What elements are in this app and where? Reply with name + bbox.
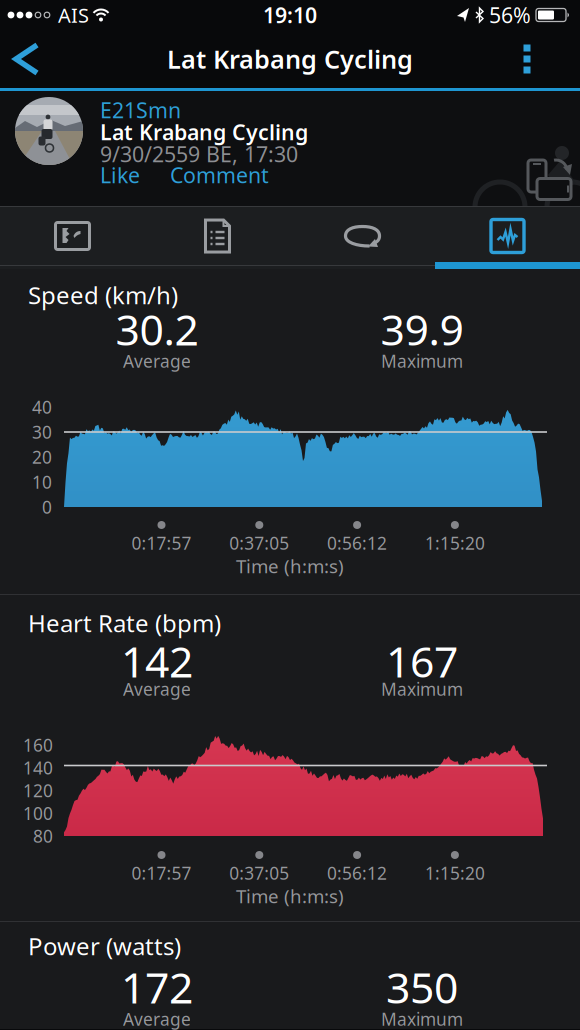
staticText: 160 — [23, 733, 53, 756]
staticText: Comment — [170, 161, 269, 189]
button[interactable]: Back — [0, 30, 56, 88]
staticText: Time (h:m:s) — [236, 884, 344, 908]
staticText: 30 — [32, 420, 52, 443]
staticText: Average — [123, 677, 191, 700]
staticText: 1:15:20 — [425, 861, 485, 884]
staticText: 39.9 — [380, 301, 463, 357]
staticText: 0:56:12 — [327, 861, 387, 884]
button[interactable]: Laps — [307, 209, 417, 263]
staticText: 56% — [489, 1, 531, 29]
staticText: Speed (km/h) — [28, 279, 178, 311]
staticText: 0:17:57 — [131, 861, 191, 884]
staticText: Like — [100, 161, 140, 189]
staticText: 100 — [23, 802, 53, 825]
staticText: 140 — [23, 756, 53, 779]
staticText: 142 — [121, 633, 193, 689]
button[interactable]: Details — [162, 209, 272, 263]
staticText: 120 — [23, 779, 53, 802]
staticText: 40 — [32, 395, 52, 418]
staticText: Maximum — [381, 349, 463, 372]
staticText: Lat Krabang Cycling — [167, 42, 413, 76]
staticText: Average — [123, 1007, 191, 1030]
staticText: 0:37:05 — [229, 531, 289, 554]
staticText: 1:15:20 — [425, 531, 485, 554]
button[interactable]: Like — [100, 161, 140, 189]
button[interactable]: Snapshots — [17, 209, 127, 263]
staticText: 0 — [42, 495, 52, 518]
staticText: 0:56:12 — [327, 531, 387, 554]
staticText: E21Smn — [100, 96, 181, 124]
staticText: 9/30/2559 BE, 17:30 — [100, 140, 298, 168]
staticText: 19:10 — [263, 1, 317, 29]
button[interactable]: Comment — [170, 161, 269, 189]
staticText: Lat Krabang Cycling — [100, 118, 308, 146]
staticText: 0:17:57 — [131, 531, 191, 554]
staticText: 167 — [386, 633, 458, 689]
staticText: AIS — [58, 2, 89, 28]
staticText: Power (watts) — [28, 930, 181, 962]
staticText: 350 — [386, 959, 458, 1015]
staticText: 172 — [121, 959, 193, 1015]
button[interactable]: Charts — [452, 209, 562, 263]
button[interactable]: More options — [505, 30, 549, 88]
staticText: Maximum — [381, 677, 463, 700]
staticText: 30.2 — [115, 301, 198, 357]
staticText: 80 — [33, 824, 53, 847]
staticText: 0:37:05 — [229, 861, 289, 884]
staticText: Time (h:m:s) — [236, 554, 344, 578]
staticText: 20 — [32, 445, 52, 468]
staticText: Maximum — [381, 1007, 463, 1030]
staticText: Heart Rate (bpm) — [28, 607, 221, 639]
staticText: Average — [123, 349, 191, 372]
staticText: 10 — [32, 470, 52, 493]
